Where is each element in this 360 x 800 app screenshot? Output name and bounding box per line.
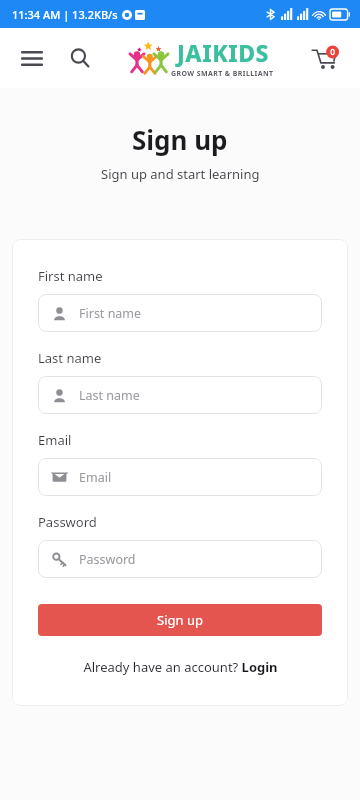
- staticText: Sign up: [132, 122, 228, 157]
- staticText: Email: [79, 469, 112, 486]
- button[interactable]: Menu: [14, 40, 50, 76]
- staticText: Password: [79, 551, 136, 568]
- button[interactable]: Email: [38, 458, 322, 496]
- staticText: Sign up: [157, 611, 203, 629]
- staticText: Email: [38, 431, 72, 449]
- button[interactable]: Search: [62, 40, 98, 76]
- staticText: GROW SMART & BRILLIANT: [171, 69, 274, 79]
- button[interactable]: Already have an account? Login: [38, 658, 322, 676]
- staticText: Last name: [79, 387, 140, 404]
- button[interactable]: Last name: [38, 376, 322, 414]
- button[interactable]: First name: [38, 294, 322, 332]
- button[interactable]: Cart: [306, 38, 346, 78]
- staticText: Last name: [38, 349, 102, 367]
- staticText: Password: [38, 513, 97, 531]
- staticText: Sign up and start learning: [101, 165, 260, 183]
- staticText: JAIKIDS: [177, 37, 269, 68]
- button[interactable]: Password: [38, 540, 322, 578]
- staticText: 11:34 AM | 13.2KB/s: [12, 7, 118, 22]
- button[interactable]: Sign up: [38, 604, 322, 636]
- staticText: First name: [79, 305, 142, 322]
- staticText: Already have an account? Login: [83, 658, 278, 676]
- staticText: First name: [38, 267, 103, 285]
